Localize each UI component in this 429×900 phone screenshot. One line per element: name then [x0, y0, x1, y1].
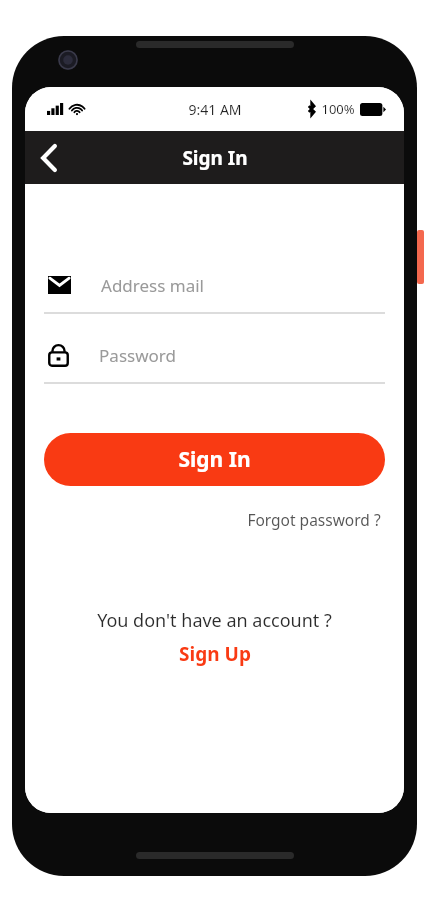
staticText: Password: [99, 344, 176, 367]
button[interactable]: Back: [25, 134, 73, 182]
button[interactable]: Sign In: [44, 433, 385, 486]
staticText: Sign In: [182, 145, 248, 171]
staticText: 100%: [321, 100, 355, 118]
button[interactable]: Password: [44, 336, 385, 384]
button[interactable]: Forgot password ?: [243, 505, 385, 534]
staticText: Forgot password ?: [247, 509, 381, 530]
staticText: 9:41 AM: [188, 100, 242, 119]
button[interactable]: Sign Up: [171, 639, 259, 669]
button[interactable]: Address mail: [44, 266, 385, 314]
staticText: Sign In: [178, 445, 251, 474]
staticText: You don't have an account ?: [97, 608, 332, 633]
staticText: Sign Up: [179, 641, 251, 667]
staticText: Address mail: [101, 274, 204, 297]
